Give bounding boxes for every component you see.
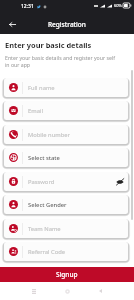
button[interactable]: Team Name bbox=[4, 219, 128, 238]
button[interactable]: Mobile number bbox=[4, 125, 128, 144]
button[interactable]: Show password bbox=[113, 175, 127, 189]
staticText: Full name bbox=[28, 84, 55, 92]
button[interactable]: Home bbox=[59, 283, 75, 299]
staticText: Email bbox=[28, 107, 43, 115]
button[interactable]: Signup bbox=[0, 267, 134, 282]
staticText: 60% bbox=[114, 3, 122, 8]
button[interactable]: Full name bbox=[4, 78, 128, 97]
staticText: Team Name bbox=[28, 225, 61, 233]
staticText: 12:31 bbox=[21, 3, 34, 10]
button[interactable]: Password bbox=[4, 172, 128, 191]
staticText: Password bbox=[28, 178, 55, 186]
staticText: Enter your basic details bbox=[5, 40, 92, 50]
staticText: Select state bbox=[28, 154, 60, 162]
button[interactable]: Back bbox=[5, 17, 19, 31]
staticText: Referral Code bbox=[28, 248, 66, 256]
staticText: Mobile number bbox=[28, 131, 70, 139]
staticText: Registration bbox=[48, 20, 86, 29]
staticText: Select Gender bbox=[28, 201, 67, 209]
button[interactable]: Select state bbox=[4, 148, 128, 167]
staticText: Enter your basic details and register yo… bbox=[5, 54, 115, 68]
button[interactable]: Back bbox=[92, 283, 108, 299]
staticText: Signup bbox=[56, 270, 78, 279]
button[interactable]: Select Gender bbox=[4, 195, 128, 214]
button[interactable]: Referral Code bbox=[4, 242, 128, 261]
button[interactable]: Recent apps bbox=[26, 283, 42, 299]
button[interactable]: Email bbox=[4, 101, 128, 120]
